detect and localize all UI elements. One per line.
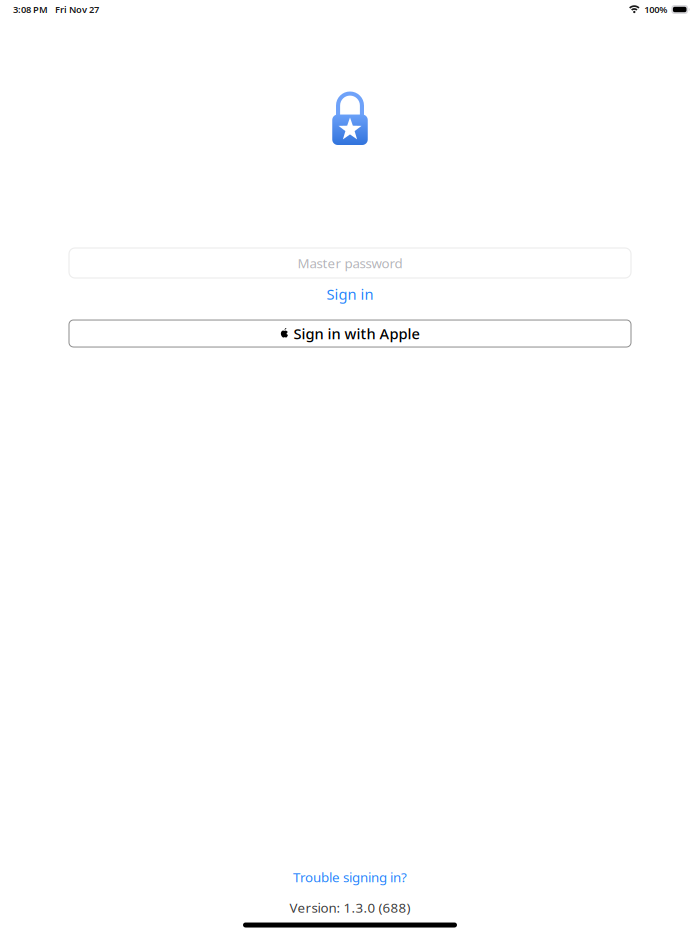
staticText: Trouble signing in? — [293, 868, 407, 886]
button[interactable]: Sign in — [290, 283, 410, 305]
staticText: Master password — [297, 254, 402, 272]
button[interactable]: Master password — [69, 248, 631, 278]
staticText: 3:08 PM — [13, 3, 48, 16]
button[interactable]: Sign in with Apple — [69, 320, 631, 347]
staticText: 100% — [644, 3, 667, 16]
staticText: Sign in — [326, 284, 373, 304]
staticText: Fri Nov 27 — [55, 3, 99, 16]
staticText: Version: 1.3.0 (688) — [289, 899, 410, 916]
staticText: Sign in with Apple — [293, 324, 419, 343]
button[interactable]: Trouble signing in? — [270, 867, 430, 887]
